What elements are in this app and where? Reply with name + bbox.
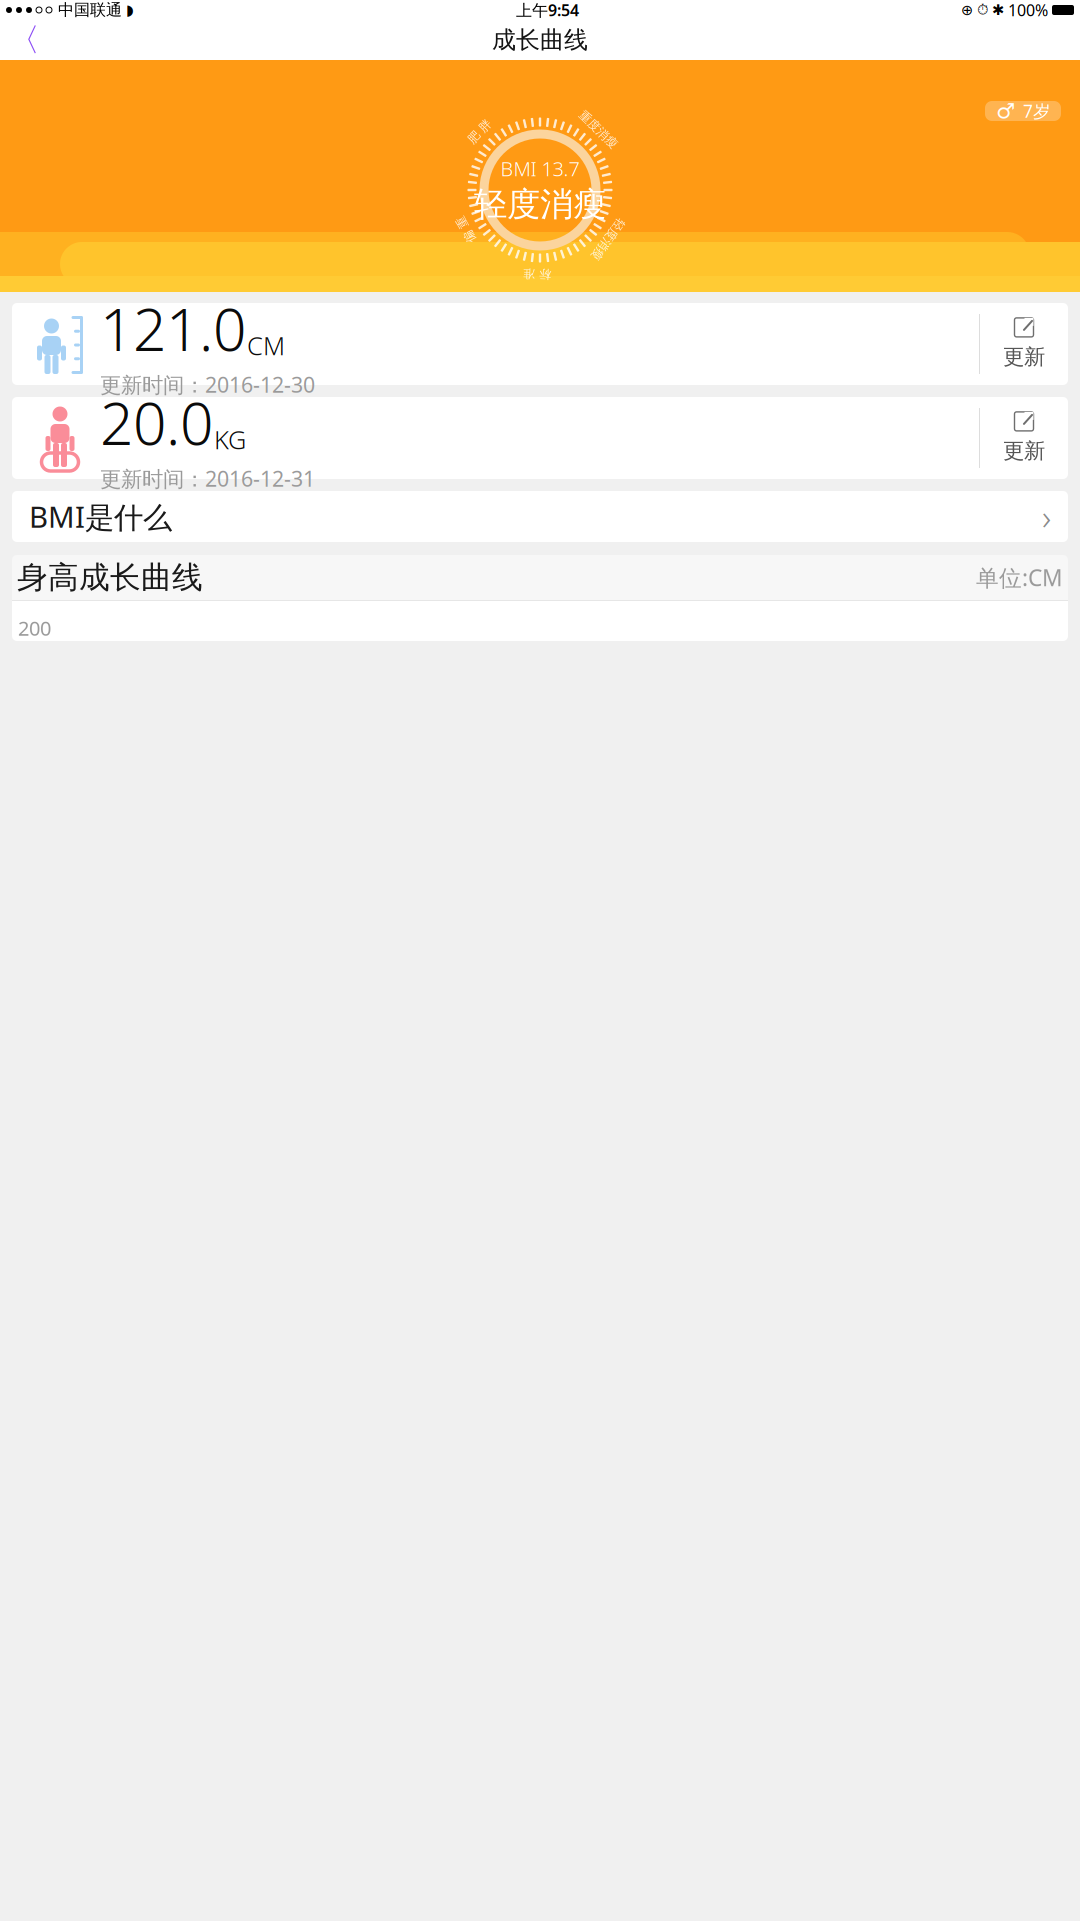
button[interactable]: 更新 bbox=[980, 301, 1068, 387]
staticText: 200 bbox=[18, 615, 51, 641]
staticText: › bbox=[1042, 493, 1051, 539]
staticText: 中国联通 bbox=[58, 0, 122, 20]
button[interactable]: 体重 20.0 KG bbox=[12, 397, 1068, 479]
staticText: ◗ bbox=[126, 2, 134, 18]
button[interactable]: 身高 121.0 CM bbox=[12, 303, 1068, 385]
staticText: 121.0 bbox=[100, 289, 246, 367]
staticText: 上午9:54 bbox=[516, 0, 579, 21]
staticText: ♂ bbox=[996, 99, 1015, 123]
staticText: 100% bbox=[1008, 0, 1048, 21]
staticText: 轻度消瘦 bbox=[474, 184, 606, 225]
staticText: 更新时间：2016-12-30 bbox=[100, 370, 315, 399]
staticText: 〈 bbox=[8, 20, 40, 60]
staticText: CM bbox=[247, 329, 285, 362]
button[interactable]: BMI是什么 bbox=[12, 491, 1068, 542]
staticText: BMI是什么 bbox=[29, 497, 172, 536]
staticText: ⊕ bbox=[961, 2, 973, 18]
button[interactable]: 更新 bbox=[980, 395, 1068, 481]
button[interactable]: 男 7岁 bbox=[985, 101, 1061, 121]
staticText: 更新时间：2016-12-31 bbox=[100, 464, 315, 493]
staticText: KG bbox=[214, 423, 246, 456]
staticText: ✱ bbox=[992, 2, 1004, 18]
staticText: 7岁 bbox=[1023, 99, 1050, 122]
staticText: 成长曲线 bbox=[492, 25, 588, 55]
staticText: 单位:CM bbox=[976, 562, 1063, 592]
button[interactable]: 返回 bbox=[2, 20, 46, 60]
staticText: 更新 bbox=[1003, 344, 1045, 370]
staticText: 更新 bbox=[1003, 438, 1045, 464]
staticText: 身高成长曲线 bbox=[17, 559, 203, 596]
staticText: ⏱ bbox=[977, 3, 988, 17]
staticText: 20.0 bbox=[100, 383, 213, 461]
staticText: BMI 13.7 bbox=[500, 155, 579, 182]
